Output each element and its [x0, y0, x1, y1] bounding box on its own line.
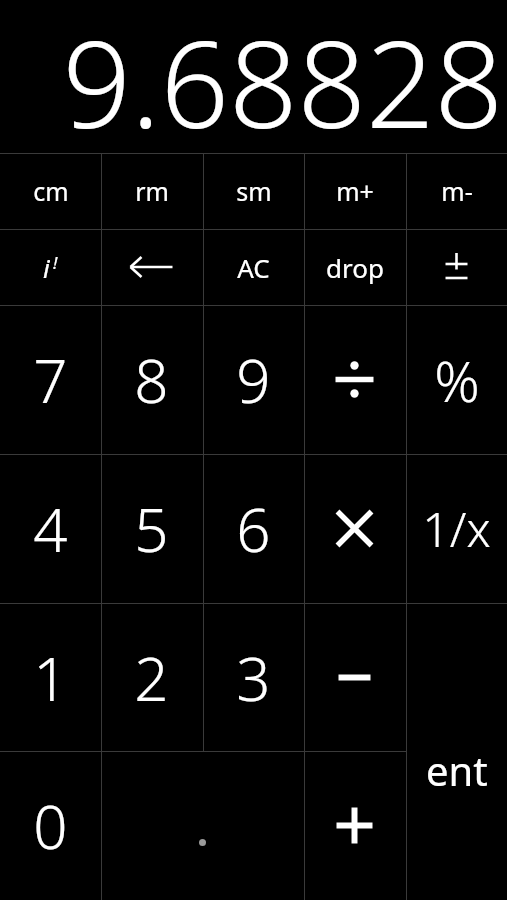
- button[interactable]: 2: [101, 603, 202, 752]
- staticText: 7: [33, 339, 68, 421]
- staticText: 3: [236, 637, 271, 719]
- staticText: sm: [236, 174, 272, 208]
- staticText: 1/x: [422, 496, 491, 561]
- staticText: cm: [33, 174, 69, 208]
- staticText: 0: [33, 785, 68, 867]
- button[interactable]: 7: [0, 305, 101, 454]
- button[interactable]: 4: [0, 454, 101, 603]
- button[interactable]: ent: [406, 603, 507, 900]
- staticText: i: [43, 250, 50, 285]
- button[interactable]: 1: [0, 603, 101, 752]
- staticText: m+: [336, 174, 374, 208]
- button[interactable]: 9: [203, 305, 304, 454]
- button[interactable]: Decimal point: [101, 751, 304, 900]
- button[interactable]: 6: [203, 454, 304, 603]
- staticText: !: [53, 251, 58, 274]
- staticText: drop: [326, 250, 384, 285]
- staticText: AC: [237, 250, 270, 285]
- button[interactable]: rm: [101, 153, 202, 229]
- staticText: 4: [33, 488, 68, 570]
- staticText: %: [434, 342, 480, 418]
- staticText: 9.68828: [62, 0, 503, 141]
- staticText: 9: [236, 339, 271, 421]
- button[interactable]: m+: [304, 153, 405, 229]
- staticText: 2: [134, 637, 169, 719]
- button[interactable]: 0: [0, 751, 101, 900]
- button[interactable]: AC: [203, 229, 304, 305]
- button[interactable]: 8: [101, 305, 202, 454]
- button[interactable]: Divide: [304, 305, 405, 454]
- button[interactable]: 1/x: [406, 454, 507, 603]
- button[interactable]: Plus: [304, 751, 405, 900]
- button[interactable]: 5: [101, 454, 202, 603]
- button[interactable]: sm: [203, 153, 304, 229]
- staticText: 8: [134, 339, 169, 421]
- button[interactable]: Multiply: [304, 454, 405, 603]
- button[interactable]: Backspace: [101, 229, 202, 305]
- staticText: 6: [236, 488, 271, 570]
- staticText: ent: [426, 743, 488, 797]
- button[interactable]: Plus or minus: [406, 229, 507, 305]
- staticText: rm: [135, 174, 169, 208]
- button[interactable]: Minus: [304, 603, 405, 752]
- button[interactable]: i: [0, 229, 101, 305]
- button[interactable]: m-: [406, 153, 507, 229]
- button[interactable]: drop: [304, 229, 405, 305]
- button[interactable]: cm: [0, 153, 101, 229]
- button[interactable]: 3: [203, 603, 304, 752]
- staticText: 1: [33, 637, 68, 719]
- staticText: 5: [134, 488, 169, 570]
- staticText: m-: [441, 174, 473, 208]
- button[interactable]: %: [406, 305, 507, 454]
